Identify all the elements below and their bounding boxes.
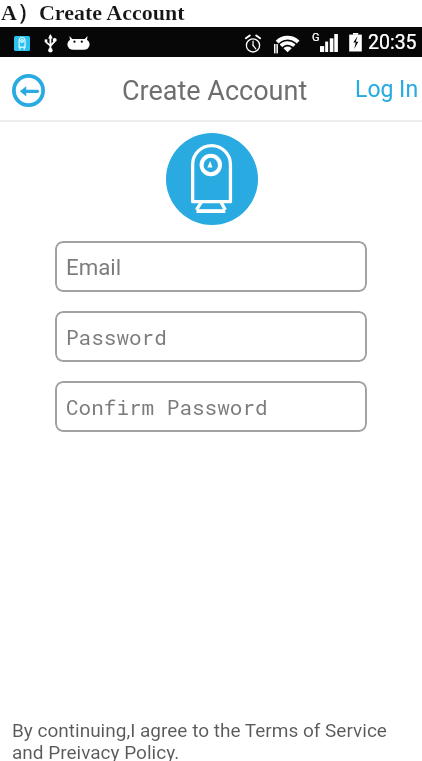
staticText: Confirm Password: [66, 393, 268, 421]
button[interactable]: Log In: [349, 76, 422, 103]
staticText: G: [312, 31, 320, 44]
button[interactable]: Password: [55, 311, 367, 362]
staticText: 20:35: [368, 31, 417, 54]
button[interactable]: Back: [6, 67, 51, 112]
staticText: By continuing,I agree to the Terms of Se…: [12, 719, 387, 761]
button[interactable]: Confirm Password: [55, 381, 367, 432]
staticText: A）Create Account: [1, 0, 185, 26]
staticText: Password: [66, 323, 167, 351]
staticText: Email: [66, 254, 122, 280]
staticText: Create Account: [122, 75, 308, 107]
staticText: Log In: [355, 76, 419, 103]
button[interactable]: Email: [55, 241, 367, 292]
